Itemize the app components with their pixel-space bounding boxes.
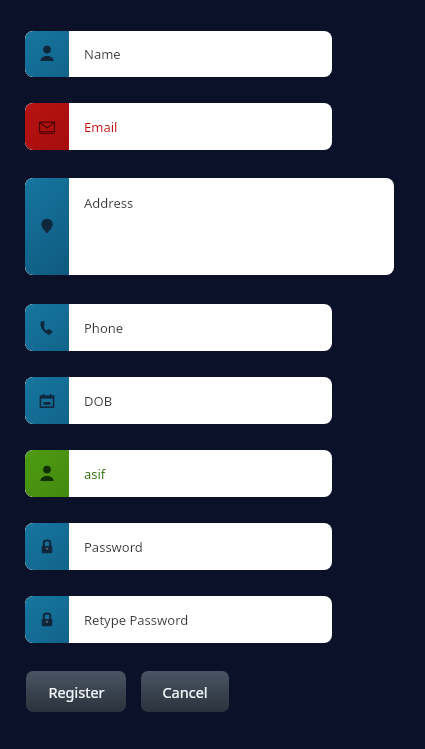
button[interactable]: Retype password: [25, 596, 332, 643]
button[interactable]: Name: [25, 31, 332, 77]
staticText: Retype Password: [84, 611, 189, 629]
button[interactable]: Register: [26, 671, 126, 712]
other: Retype password: [25, 596, 69, 643]
staticText: DOB: [84, 392, 113, 410]
button[interactable]: Phone: [25, 304, 332, 351]
staticText: Register: [48, 682, 105, 702]
button[interactable]: Address: [25, 178, 394, 275]
staticText: Email: [84, 118, 118, 136]
staticText: Name: [84, 45, 121, 63]
button[interactable]: Username: [25, 450, 332, 497]
button[interactable]: Date of birth: [25, 377, 332, 424]
other: Name: [25, 31, 69, 77]
other: Email: [25, 103, 69, 150]
other: Password: [25, 523, 69, 570]
button[interactable]: Password: [25, 523, 332, 570]
button[interactable]: Email: [25, 103, 332, 150]
other: Phone: [25, 304, 69, 351]
staticText: asif: [84, 465, 106, 483]
staticText: Address: [84, 194, 134, 212]
staticText: Password: [84, 538, 143, 556]
other: Username: [25, 450, 69, 497]
button[interactable]: Cancel: [141, 671, 229, 712]
staticText: Phone: [84, 319, 124, 337]
other: Date of birth: [25, 377, 69, 424]
other: Address: [25, 178, 69, 275]
staticText: Cancel: [162, 682, 208, 702]
